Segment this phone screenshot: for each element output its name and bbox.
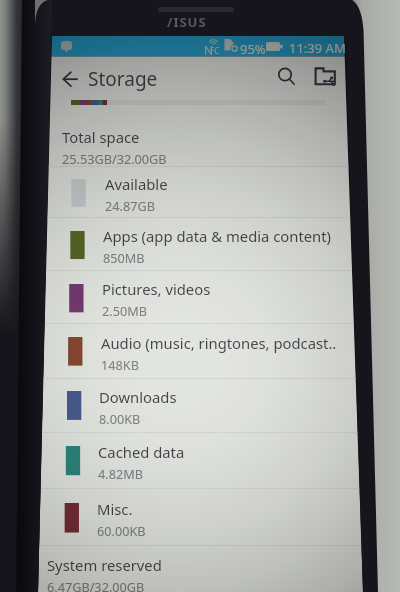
staticText: 2.50MB [102,302,147,319]
staticText: Available [105,174,168,194]
staticText: 11:39 AM [289,39,346,57]
button[interactable]: Downloads [43,378,355,432]
button[interactable]: Total space [62,127,242,167]
button[interactable]: Available [49,166,349,217]
staticText: 4.82MB [98,465,143,482]
staticText: 148KB [101,356,139,373]
staticText: 95% [240,40,266,58]
button[interactable]: Search [272,62,300,90]
staticText: N [204,42,214,58]
staticText: Cached data [98,442,185,462]
staticText: Downloads [99,387,177,407]
staticText: System reserved [47,555,162,575]
button[interactable]: Apps (app data & media content) [47,217,350,270]
button[interactable]: Audio (music, ringtones, podcast.. [45,323,354,378]
button[interactable]: Back [58,65,86,93]
staticText: Pictures, videos [102,279,211,299]
staticText: 60.00KB [97,522,146,539]
staticText: Audio (music, ringtones, podcast.. [101,333,337,353]
staticText: /ISUS [167,13,207,31]
button[interactable]: Cached data [42,432,358,488]
staticText: 25.53GB/32.00GB [62,150,167,167]
button[interactable]: Misc. [41,488,360,545]
button[interactable]: USB storage [312,64,338,90]
staticText: 8.00KB [99,410,141,427]
staticText: Apps (app data & media content) [103,226,332,246]
staticText: Storage [88,66,158,92]
staticText: 6.47GB/32.00GB [47,578,145,592]
staticText: 24.87GB [105,197,155,214]
button[interactable]: System reserved [47,555,247,592]
staticText: Misc. [97,499,133,519]
staticText: Total space [62,127,140,147]
button[interactable]: Pictures, videos [46,270,352,323]
staticText: FC [210,45,220,56]
staticText: 850MB [103,249,145,266]
